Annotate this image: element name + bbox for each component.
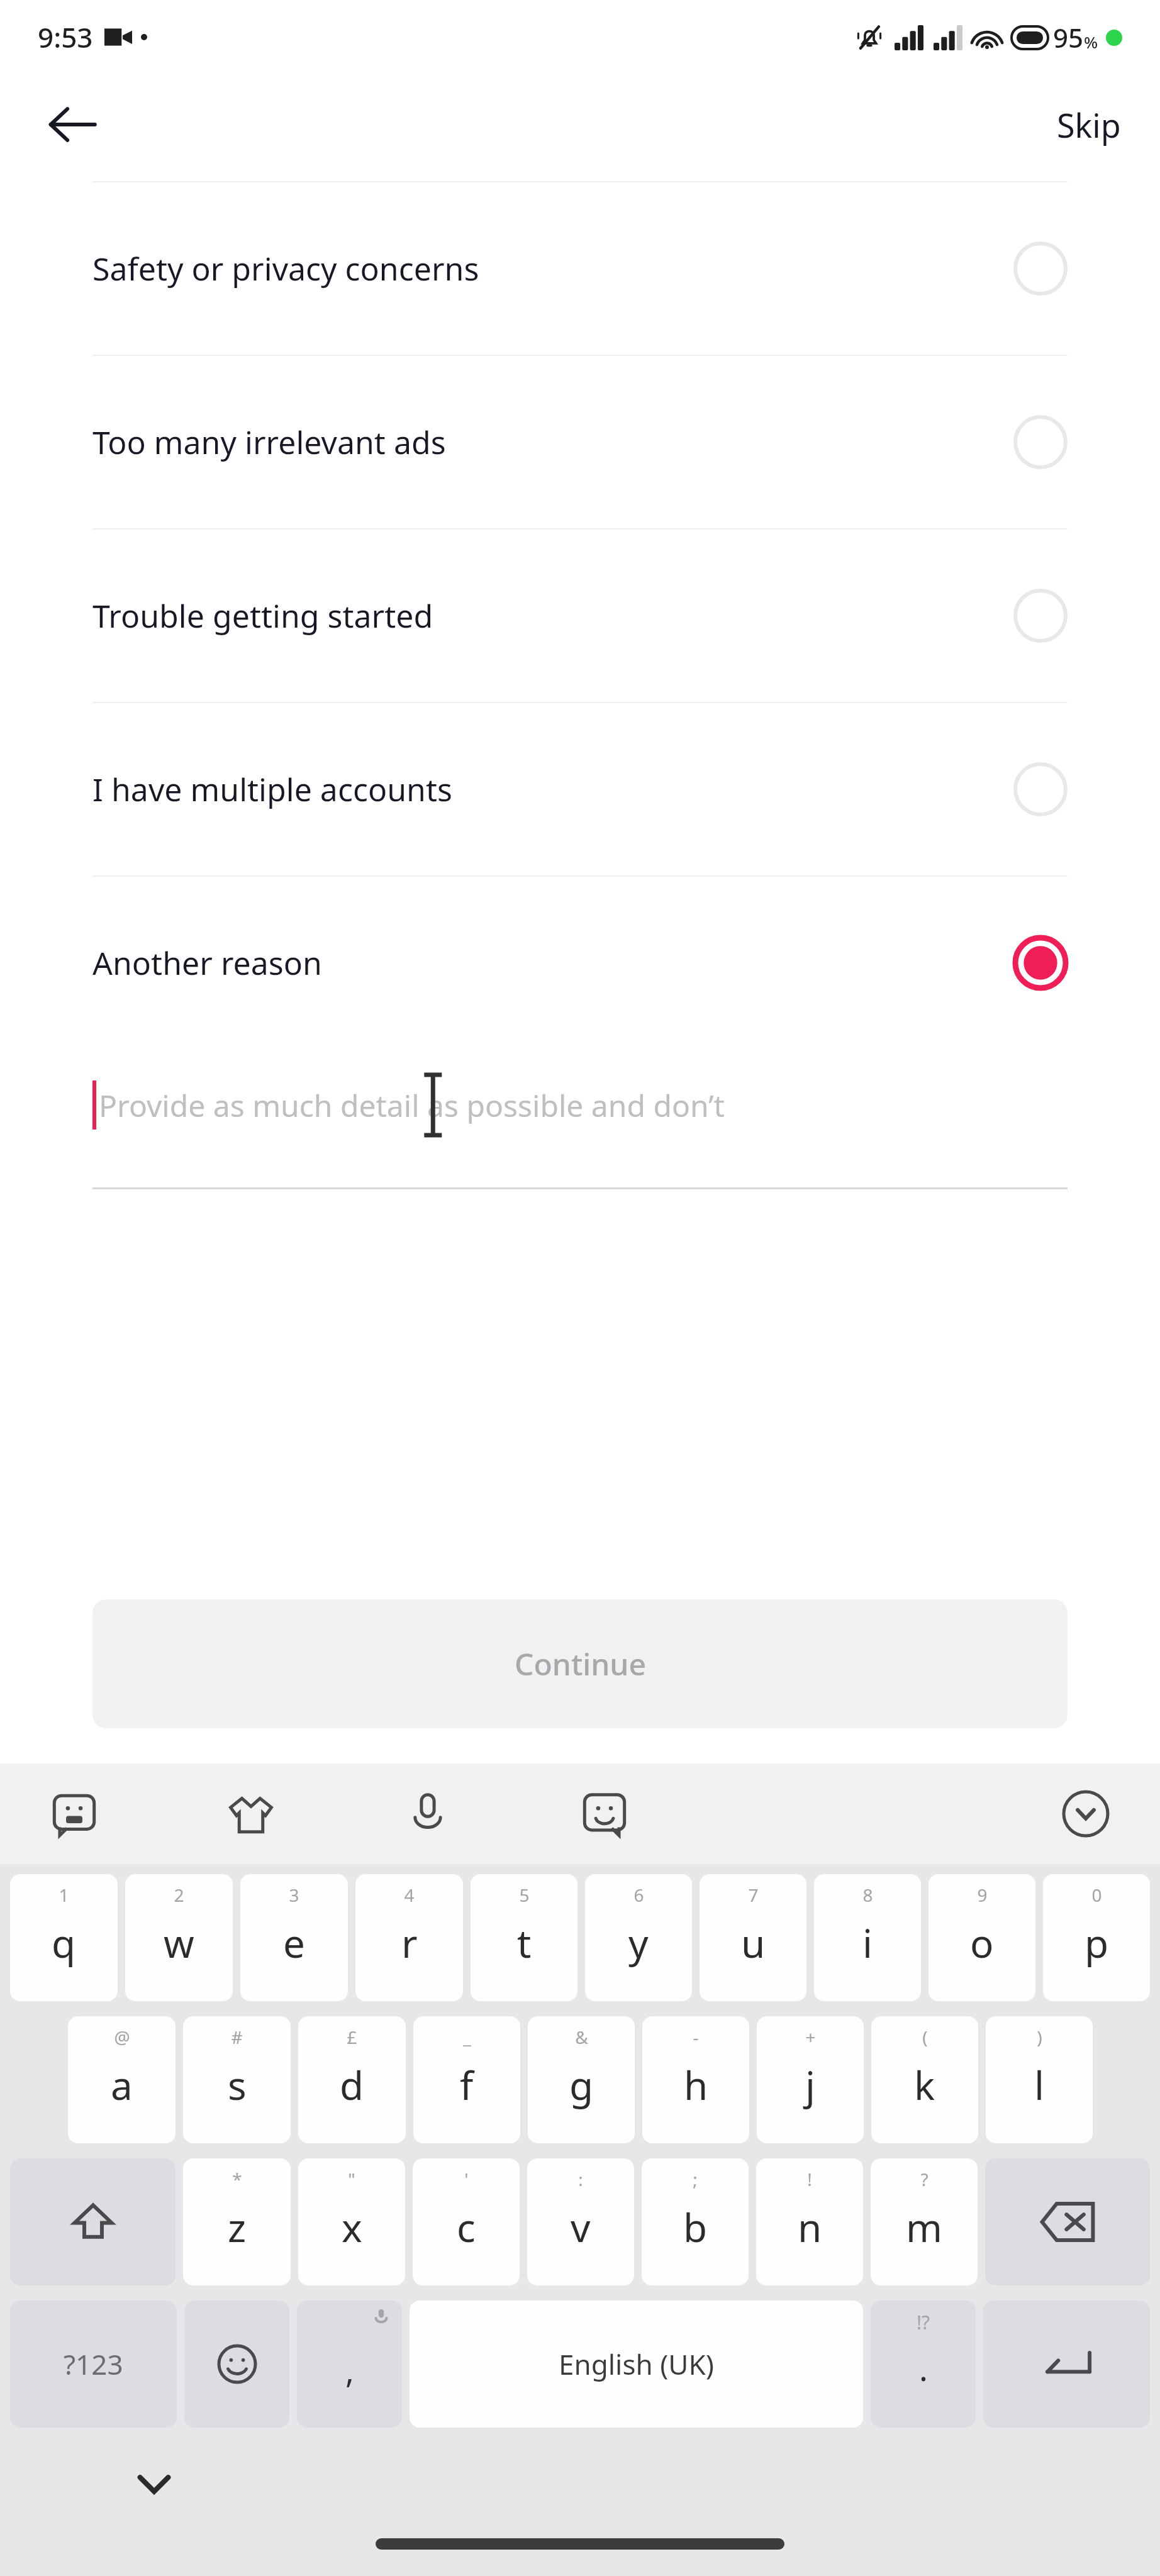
button[interactable]: Trouble getting started <box>0 530 1160 702</box>
staticText: Another reason <box>92 941 1013 984</box>
button[interactable]: !? <box>871 2301 976 2428</box>
button[interactable]: Emoji <box>184 2301 289 2428</box>
button[interactable]: ? <box>871 2158 978 2285</box>
button[interactable]: Back <box>38 90 107 159</box>
button[interactable]: 1 <box>10 1874 118 2001</box>
button[interactable]: + <box>757 2016 864 2143</box>
staticText: l <box>1034 2058 1044 2111</box>
staticText: 95 <box>1053 19 1084 55</box>
button[interactable]: Enter <box>983 2301 1150 2428</box>
button[interactable]: English (UK) <box>410 2301 863 2428</box>
button[interactable]: Stickers <box>44 1784 104 1844</box>
button[interactable]: 6 <box>585 1874 692 2001</box>
button[interactable]: Hide keyboard <box>120 2449 189 2518</box>
staticText: 6 <box>633 1883 644 1907</box>
staticText: Too many irrelevant ads <box>92 421 1013 464</box>
staticText: 9:53 <box>38 18 93 56</box>
button[interactable]: 2 <box>125 1874 233 2001</box>
staticText: ; <box>693 2167 698 2191</box>
staticText: 1 <box>59 1883 69 1907</box>
button[interactable]: ?123 <box>10 2301 177 2428</box>
button[interactable]: - <box>642 2016 749 2143</box>
button[interactable]: Another reason <box>0 877 1160 1049</box>
staticText: Safety or privacy concerns <box>92 247 1013 290</box>
staticText: Skip <box>1057 103 1121 147</box>
staticText: k <box>914 2058 935 2111</box>
button[interactable]: 5 <box>471 1874 577 2001</box>
button[interactable]: : <box>527 2158 634 2285</box>
button[interactable]: @ <box>68 2016 176 2143</box>
staticText: & <box>575 2025 588 2049</box>
button[interactable]: * <box>183 2158 291 2285</box>
staticText: r <box>401 1916 418 1969</box>
button[interactable]: _ <box>413 2016 520 2143</box>
button[interactable]: 9 <box>929 1874 1035 2001</box>
staticText: + <box>805 2025 816 2049</box>
button[interactable]: , <box>297 2301 402 2428</box>
staticText: ! <box>807 2167 812 2191</box>
button[interactable]: Collapse toolbar <box>1056 1784 1116 1844</box>
staticText: * <box>232 2167 242 2191</box>
staticText: p <box>1085 1916 1109 1969</box>
button[interactable]: ( <box>871 2016 978 2143</box>
button[interactable]: Provide as much detail as possible and d… <box>92 1058 1068 1189</box>
staticText: Provide as much detail as possible and d… <box>99 1085 725 1126</box>
button[interactable]: Voice input <box>398 1784 458 1844</box>
button[interactable]: Themes <box>221 1784 281 1844</box>
staticText: 9 <box>977 1883 988 1907</box>
staticText: _ <box>463 2025 471 2049</box>
staticText: @ <box>114 2025 130 2049</box>
staticText: h <box>684 2058 708 2111</box>
staticText: t <box>517 1916 532 1969</box>
button[interactable]: Emoji <box>574 1784 635 1844</box>
staticText: £ <box>347 2025 357 2049</box>
staticText: x <box>342 2201 362 2253</box>
button[interactable]: Too many irrelevant ads <box>0 356 1160 528</box>
button[interactable]: 3 <box>240 1874 348 2001</box>
button[interactable]: & <box>528 2016 635 2143</box>
staticText: a <box>111 2058 133 2111</box>
staticText: v <box>571 2201 591 2253</box>
staticText: 8 <box>862 1883 873 1907</box>
button[interactable]: £ <box>298 2016 406 2143</box>
button[interactable]: I have multiple accounts <box>0 703 1160 875</box>
button[interactable]: Continue <box>92 1599 1068 1728</box>
staticText: m <box>906 2201 942 2253</box>
button[interactable]: ' <box>413 2158 520 2285</box>
staticText: 0 <box>1091 1883 1102 1907</box>
staticText: 7 <box>748 1883 759 1907</box>
button[interactable]: Backspace <box>985 2158 1150 2285</box>
staticText: y <box>628 1916 649 1969</box>
button[interactable]: ! <box>756 2158 863 2285</box>
staticText: # <box>231 2025 243 2049</box>
staticText: , <box>345 2348 354 2392</box>
staticText: I have multiple accounts <box>92 768 1013 811</box>
button[interactable]: Safety or privacy concerns <box>0 182 1160 355</box>
staticText: 5 <box>519 1883 530 1907</box>
staticText: f <box>460 2058 474 2111</box>
staticText: Trouble getting started <box>92 594 1013 637</box>
button[interactable]: Shift <box>10 2158 176 2285</box>
button[interactable]: ) <box>986 2016 1093 2143</box>
button[interactable]: 7 <box>700 1874 806 2001</box>
staticText: q <box>52 1916 76 1969</box>
staticText: j <box>805 2058 815 2111</box>
staticText: English (UK) <box>559 2345 714 2383</box>
staticText: b <box>683 2201 708 2253</box>
button[interactable]: # <box>183 2016 291 2143</box>
staticText: ) <box>1037 2025 1042 2049</box>
staticText: n <box>798 2201 822 2253</box>
button[interactable]: Skip <box>1043 94 1135 156</box>
staticText: e <box>283 1916 305 1969</box>
button[interactable]: 8 <box>814 1874 921 2001</box>
staticText: u <box>741 1916 766 1969</box>
button[interactable]: " <box>298 2158 405 2285</box>
button[interactable]: ; <box>642 2158 749 2285</box>
button[interactable]: 0 <box>1043 1874 1150 2001</box>
staticText: g <box>569 2058 594 2111</box>
staticText: s <box>228 2058 247 2111</box>
staticText: - <box>693 2025 699 2049</box>
button[interactable]: 4 <box>355 1874 463 2001</box>
staticText: . <box>919 2346 928 2390</box>
staticText: c <box>457 2201 476 2253</box>
